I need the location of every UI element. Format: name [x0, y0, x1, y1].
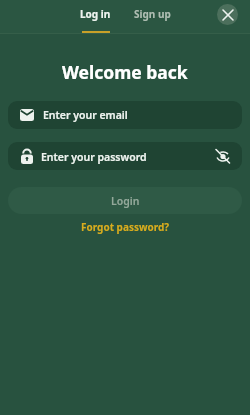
button[interactable]: Log in	[80, 0, 111, 34]
staticText: Enter your password	[41, 150, 147, 164]
button[interactable]: Enter your email	[8, 101, 242, 129]
staticText: Login	[111, 194, 140, 208]
staticText: Enter your email	[43, 108, 128, 122]
button[interactable]	[217, 4, 238, 25]
staticText: Sign up	[134, 7, 171, 21]
button[interactable]: Login	[8, 187, 242, 214]
staticText: Welcome back	[62, 60, 188, 84]
button[interactable]	[214, 147, 232, 165]
button[interactable]: Enter your password	[8, 142, 242, 170]
button[interactable]: Forgot password?	[81, 220, 170, 234]
staticText: Log in	[80, 7, 111, 21]
button[interactable]: Sign up	[134, 0, 171, 34]
